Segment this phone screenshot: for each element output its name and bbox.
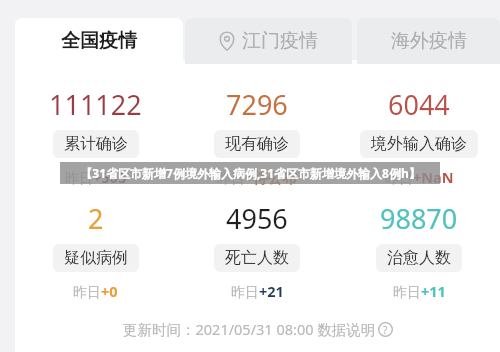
button[interactable]: 全国疫情 <box>15 18 183 64</box>
button[interactable]: 111122 <box>15 86 176 187</box>
staticText: 2 <box>88 200 104 237</box>
staticText: 98870 <box>380 200 458 237</box>
staticText: 昨日+21 <box>231 281 284 301</box>
button[interactable]: 海外疫情 <box>357 18 500 64</box>
staticText: 7296 <box>226 86 288 123</box>
other: Location <box>219 32 235 51</box>
staticText: 昨日+503 <box>65 167 127 187</box>
staticText: ? <box>383 323 388 337</box>
button[interactable]: 6044 <box>338 86 500 187</box>
staticText: 累计确诊 <box>64 134 128 154</box>
staticText: 【31省区市新增7例境外输入病例,31省区市新增境外输入8例h】 <box>80 165 421 181</box>
staticText: 6044 <box>388 86 450 123</box>
staticText: 昨日+NaN <box>385 167 454 187</box>
staticText: 死亡人数 <box>225 248 289 268</box>
staticText: 昨日+待公布 <box>217 167 297 187</box>
button[interactable]: Location <box>185 18 352 64</box>
button[interactable]: 更新时间：2021/05/31 08:00 数据说明 <box>15 312 500 346</box>
staticText: 4956 <box>226 200 288 237</box>
other: Data explanation <box>378 322 393 337</box>
button[interactable]: 98870 <box>338 200 500 301</box>
staticText: 江门疫情 <box>242 29 318 53</box>
staticText: 111122 <box>49 86 142 123</box>
staticText: 更新时间：2021/05/31 08:00 数据说明 <box>123 319 376 339</box>
staticText: 境外输入确诊 <box>371 134 467 154</box>
button[interactable]: 2 <box>15 200 176 301</box>
staticText: 海外疫情 <box>391 29 467 53</box>
staticText: 昨日+11 <box>393 281 446 301</box>
staticText: 治愈人数 <box>387 248 451 268</box>
staticText: 现有确诊 <box>225 134 289 154</box>
staticText: 全国疫情 <box>61 29 137 53</box>
staticText: 疑似病例 <box>64 248 128 268</box>
button[interactable]: 4956 <box>176 200 338 301</box>
staticText: 昨日+0 <box>73 281 118 301</box>
button[interactable]: 7296 <box>176 86 338 187</box>
